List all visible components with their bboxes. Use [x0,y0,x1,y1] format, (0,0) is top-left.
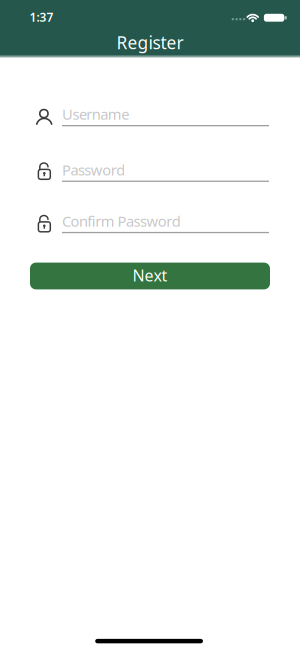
button[interactable]: Confirm Password [62,207,269,233]
staticText: Confirm Password [62,211,181,231]
staticText: 1:37 [29,9,53,25]
staticText: Register [116,31,183,54]
button[interactable]: Next [30,263,270,289]
staticText: Username [62,104,129,124]
staticText: Password [62,160,125,179]
button[interactable]: Password [62,156,269,182]
staticText: Next [132,265,167,286]
button[interactable]: Username [62,100,269,126]
